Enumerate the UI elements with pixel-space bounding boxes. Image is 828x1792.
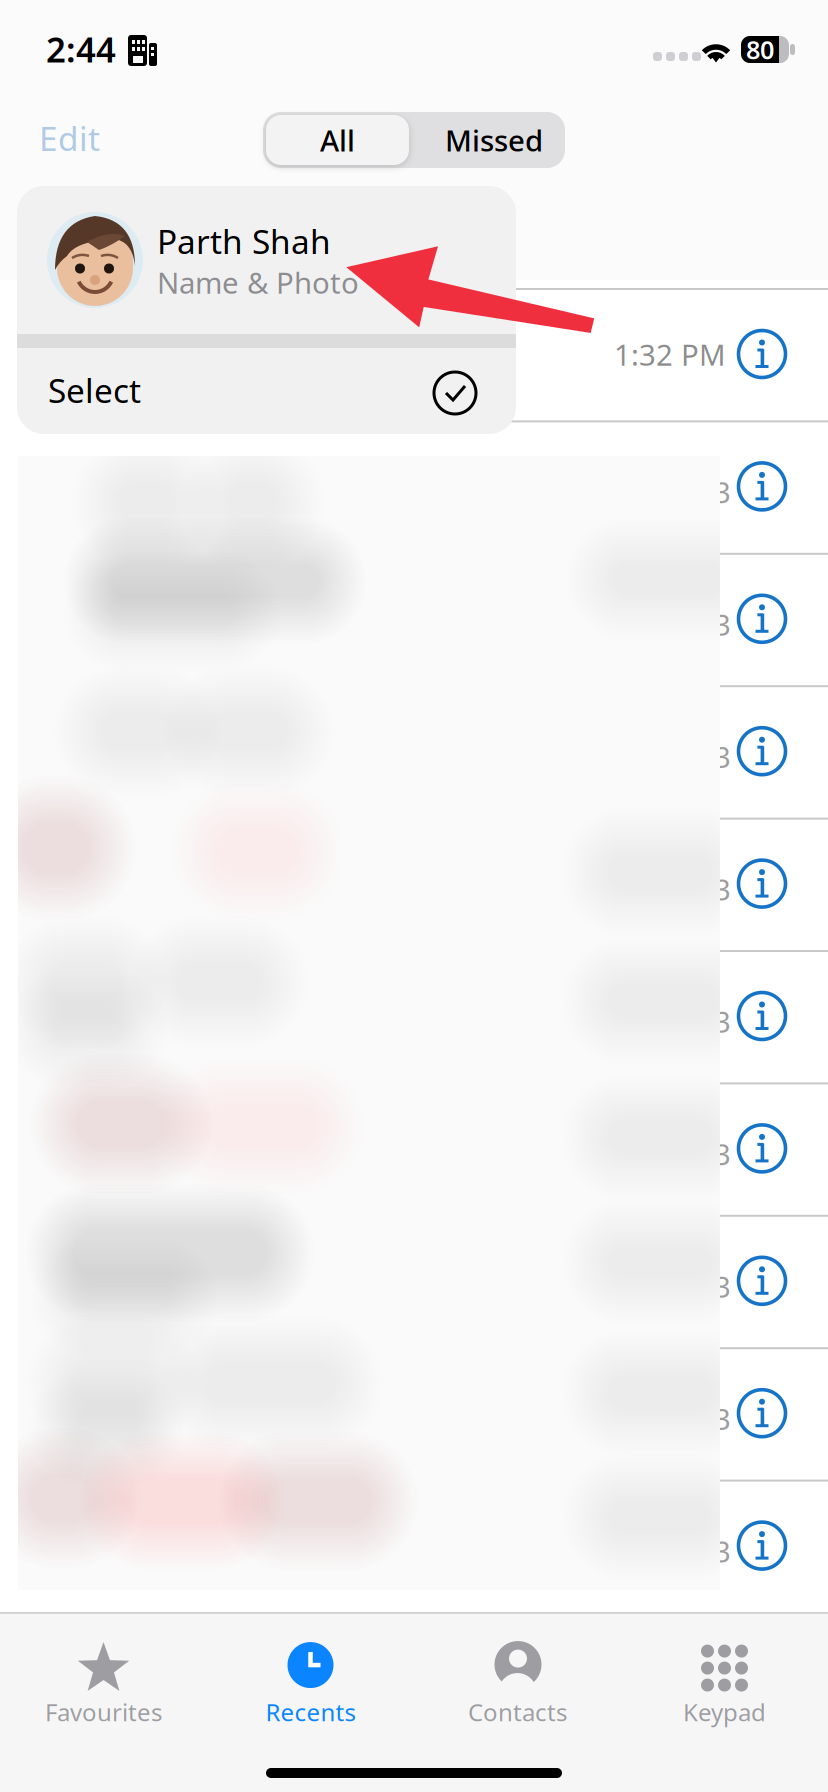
staticText: Select xyxy=(48,368,141,412)
button[interactable]: Contacts xyxy=(414,1628,621,1740)
staticText: All xyxy=(320,120,355,159)
button[interactable]: Recents xyxy=(207,1628,414,1740)
staticText: 3 xyxy=(714,605,731,644)
staticText: 3 xyxy=(714,737,731,776)
button[interactable]: Call details xyxy=(734,988,790,1044)
button[interactable]: Call details xyxy=(734,1650,790,1706)
button[interactable]: All xyxy=(266,115,409,165)
staticText: 3 xyxy=(714,1399,731,1438)
staticText: Contacts xyxy=(468,1696,567,1728)
staticText: 3 xyxy=(714,1134,731,1173)
staticText: Edit xyxy=(39,116,100,160)
staticText: Recents xyxy=(265,1696,355,1728)
button[interactable]: Favourites xyxy=(0,1628,207,1740)
staticText: 3 xyxy=(714,870,731,909)
staticText: Missed xyxy=(445,120,543,159)
button[interactable]: Call details xyxy=(734,326,790,382)
staticText: 3 xyxy=(714,1267,731,1306)
button[interactable]: Missed xyxy=(419,115,569,165)
staticText: Parth Shah xyxy=(157,219,331,263)
button[interactable]: Keypad xyxy=(621,1628,828,1740)
button[interactable]: Call details xyxy=(734,591,790,647)
button[interactable]: Call details xyxy=(734,1385,790,1441)
staticText: 3 xyxy=(714,1664,731,1703)
button[interactable]: Call details xyxy=(734,723,790,779)
staticText: 3 xyxy=(714,472,731,511)
staticText: 3 xyxy=(714,1002,731,1041)
button[interactable]: Call details xyxy=(734,1120,790,1176)
button[interactable]: Call details xyxy=(734,1253,790,1309)
button[interactable]: Select xyxy=(17,348,516,434)
button[interactable]: Parth Shah xyxy=(17,186,516,334)
button[interactable]: Edit xyxy=(39,110,149,166)
staticText: 1:32 PM xyxy=(614,335,726,374)
staticText: 3 xyxy=(714,1532,731,1571)
staticText: 2:44 xyxy=(46,26,116,72)
staticText: Keypad xyxy=(683,1696,766,1728)
button[interactable]: Call details xyxy=(734,458,790,514)
staticText: 80 xyxy=(746,33,774,66)
button[interactable]: Call details xyxy=(734,856,790,912)
staticText: Favourites xyxy=(45,1696,162,1728)
button[interactable]: Call details xyxy=(734,1518,790,1574)
staticText: Name & Photo xyxy=(157,263,359,302)
